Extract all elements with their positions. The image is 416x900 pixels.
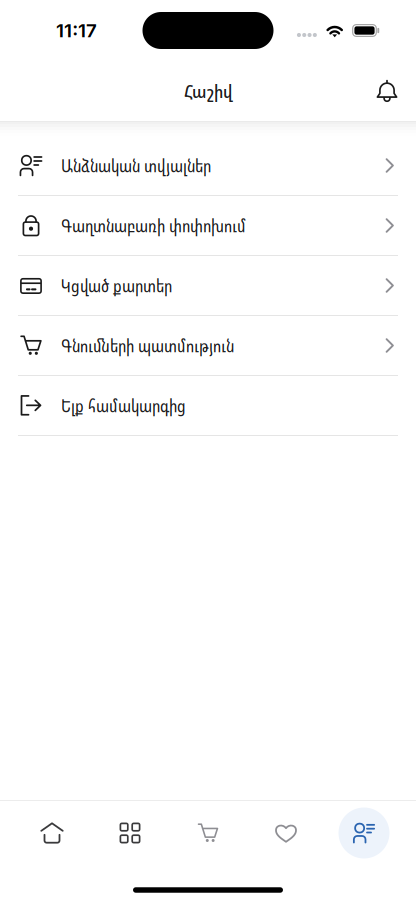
button[interactable]: Home bbox=[13, 801, 91, 865]
staticText: Գաղտնաբառի փոփոխում bbox=[61, 214, 246, 237]
button[interactable]: Favorites bbox=[247, 801, 325, 865]
staticText: Հաշիվ bbox=[184, 79, 232, 103]
staticText: Կցված քարտեր bbox=[61, 274, 172, 297]
button[interactable]: Անձնական տվյալներ bbox=[0, 136, 416, 196]
button[interactable]: Account bbox=[325, 801, 403, 865]
button[interactable]: Կցված քարտեր bbox=[0, 256, 416, 316]
button[interactable]: Ելք համակարգից bbox=[0, 376, 416, 436]
staticText: 11:17 bbox=[56, 19, 97, 42]
button[interactable]: Cart bbox=[169, 801, 247, 865]
button[interactable]: Notifications bbox=[363, 67, 411, 115]
button[interactable]: Գաղտնաբառի փոփոխում bbox=[0, 196, 416, 256]
staticText: Ելք համակարգից bbox=[61, 394, 186, 417]
staticText: Գնումների պատմություն bbox=[61, 334, 234, 357]
staticText: Անձնական տվյալներ bbox=[61, 154, 211, 177]
button[interactable]: Գնումների պատմություն bbox=[0, 316, 416, 376]
button[interactable]: Catalog bbox=[91, 801, 169, 865]
